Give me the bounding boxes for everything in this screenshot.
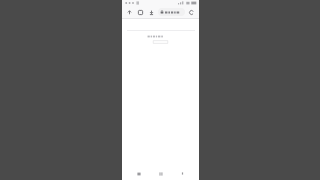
button[interactable]: Back <box>125 8 134 17</box>
button[interactable]: Tabs <box>136 8 145 17</box>
button[interactable] <box>158 8 185 16</box>
button[interactable]: Recent apps <box>177 168 188 179</box>
button[interactable]: Back <box>133 168 144 179</box>
button[interactable]: Home <box>155 168 166 179</box>
button[interactable]: Downloads <box>147 8 156 17</box>
button[interactable]: Reload <box>187 8 196 17</box>
